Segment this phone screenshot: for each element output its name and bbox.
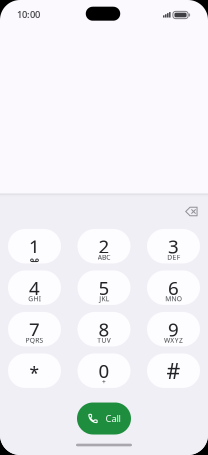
staticText: 0 (98, 358, 109, 383)
button[interactable]: 6 (147, 270, 200, 305)
button[interactable]: 3 (147, 229, 200, 263)
button[interactable]: # (147, 353, 200, 388)
staticText: ABC (98, 253, 110, 262)
button[interactable]: 7 (8, 312, 61, 346)
staticText: TUV (97, 336, 111, 345)
staticText: PQRS (26, 336, 43, 345)
button[interactable]: * (8, 353, 61, 388)
staticText: 7 (29, 317, 40, 342)
staticText: + (102, 377, 106, 386)
staticText: 3 (168, 234, 179, 259)
staticText: GHI (28, 294, 41, 303)
staticText: WXYZ (164, 336, 183, 345)
button[interactable]: 4 (8, 270, 61, 305)
staticText: Call (105, 412, 120, 425)
button[interactable]: 9 (147, 312, 200, 346)
button[interactable]: Delete (182, 203, 202, 220)
button[interactable]: 1 (8, 229, 61, 263)
button[interactable]: 5 (77, 270, 130, 305)
button[interactable]: 2 (77, 229, 130, 263)
staticText: 1 (29, 234, 40, 259)
button[interactable]: 8 (77, 312, 130, 346)
staticText: * (29, 361, 39, 384)
staticText: # (166, 356, 180, 385)
staticText: MNO (165, 294, 182, 303)
staticText: 8 (98, 317, 109, 342)
staticText: JKL (99, 294, 109, 303)
staticText: 2 (98, 234, 109, 259)
staticText: 9 (168, 317, 179, 342)
staticText: 4 (29, 275, 40, 300)
staticText: 10:00 (17, 8, 40, 21)
button[interactable]: 0 (77, 353, 130, 388)
staticText: 6 (168, 275, 179, 300)
staticText: 5 (98, 275, 109, 300)
button[interactable]: Call (77, 402, 131, 434)
staticText: DEF (167, 253, 180, 262)
